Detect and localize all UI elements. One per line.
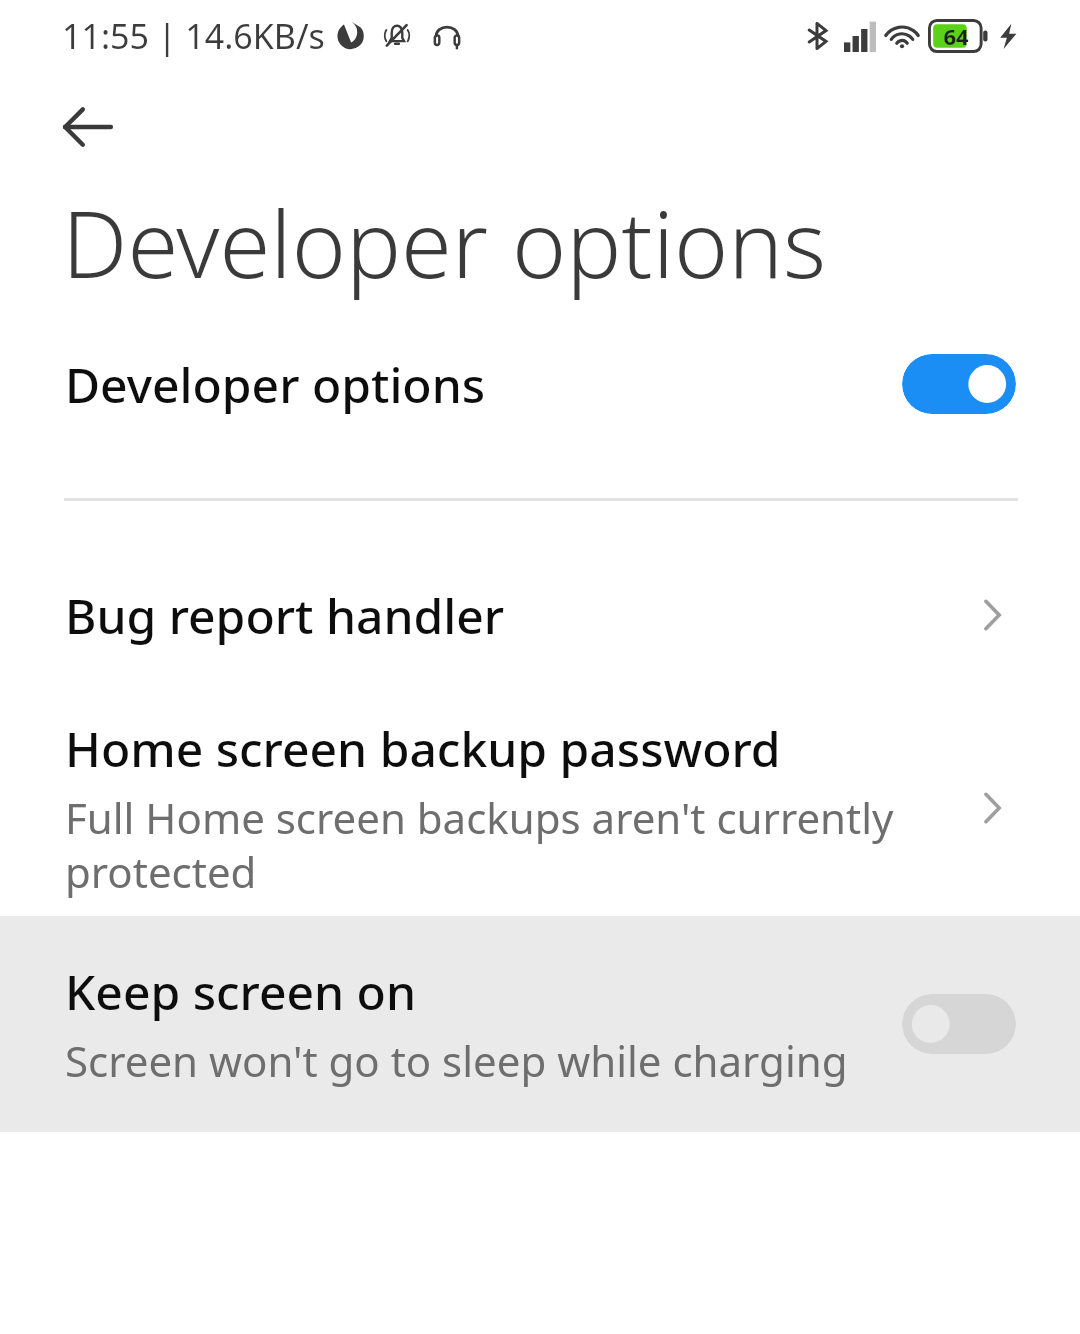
staticText: Bug report handler xyxy=(65,583,962,648)
staticText: Developer options xyxy=(65,352,902,417)
button[interactable]: Off xyxy=(902,994,1016,1054)
staticText: Home screen backup password xyxy=(65,716,781,781)
staticText: Keep screen on xyxy=(65,959,417,1024)
staticText: Developer options xyxy=(62,180,827,300)
button[interactable]: Back xyxy=(42,80,134,172)
button[interactable]: Developer options xyxy=(0,300,1080,468)
button[interactable]: On xyxy=(902,354,1016,414)
staticText: 11:55 | 14.6KB/s xyxy=(62,13,325,59)
button[interactable]: Home screen backup password xyxy=(0,700,1080,916)
staticText: Screen won't go to sleep while charging xyxy=(65,1032,848,1089)
staticText: 64 xyxy=(943,21,969,51)
staticText: Full Home screen backups aren't currentl… xyxy=(65,789,946,901)
button[interactable]: Bug report handler xyxy=(0,530,1080,700)
button[interactable]: Keep screen on xyxy=(0,916,1080,1132)
